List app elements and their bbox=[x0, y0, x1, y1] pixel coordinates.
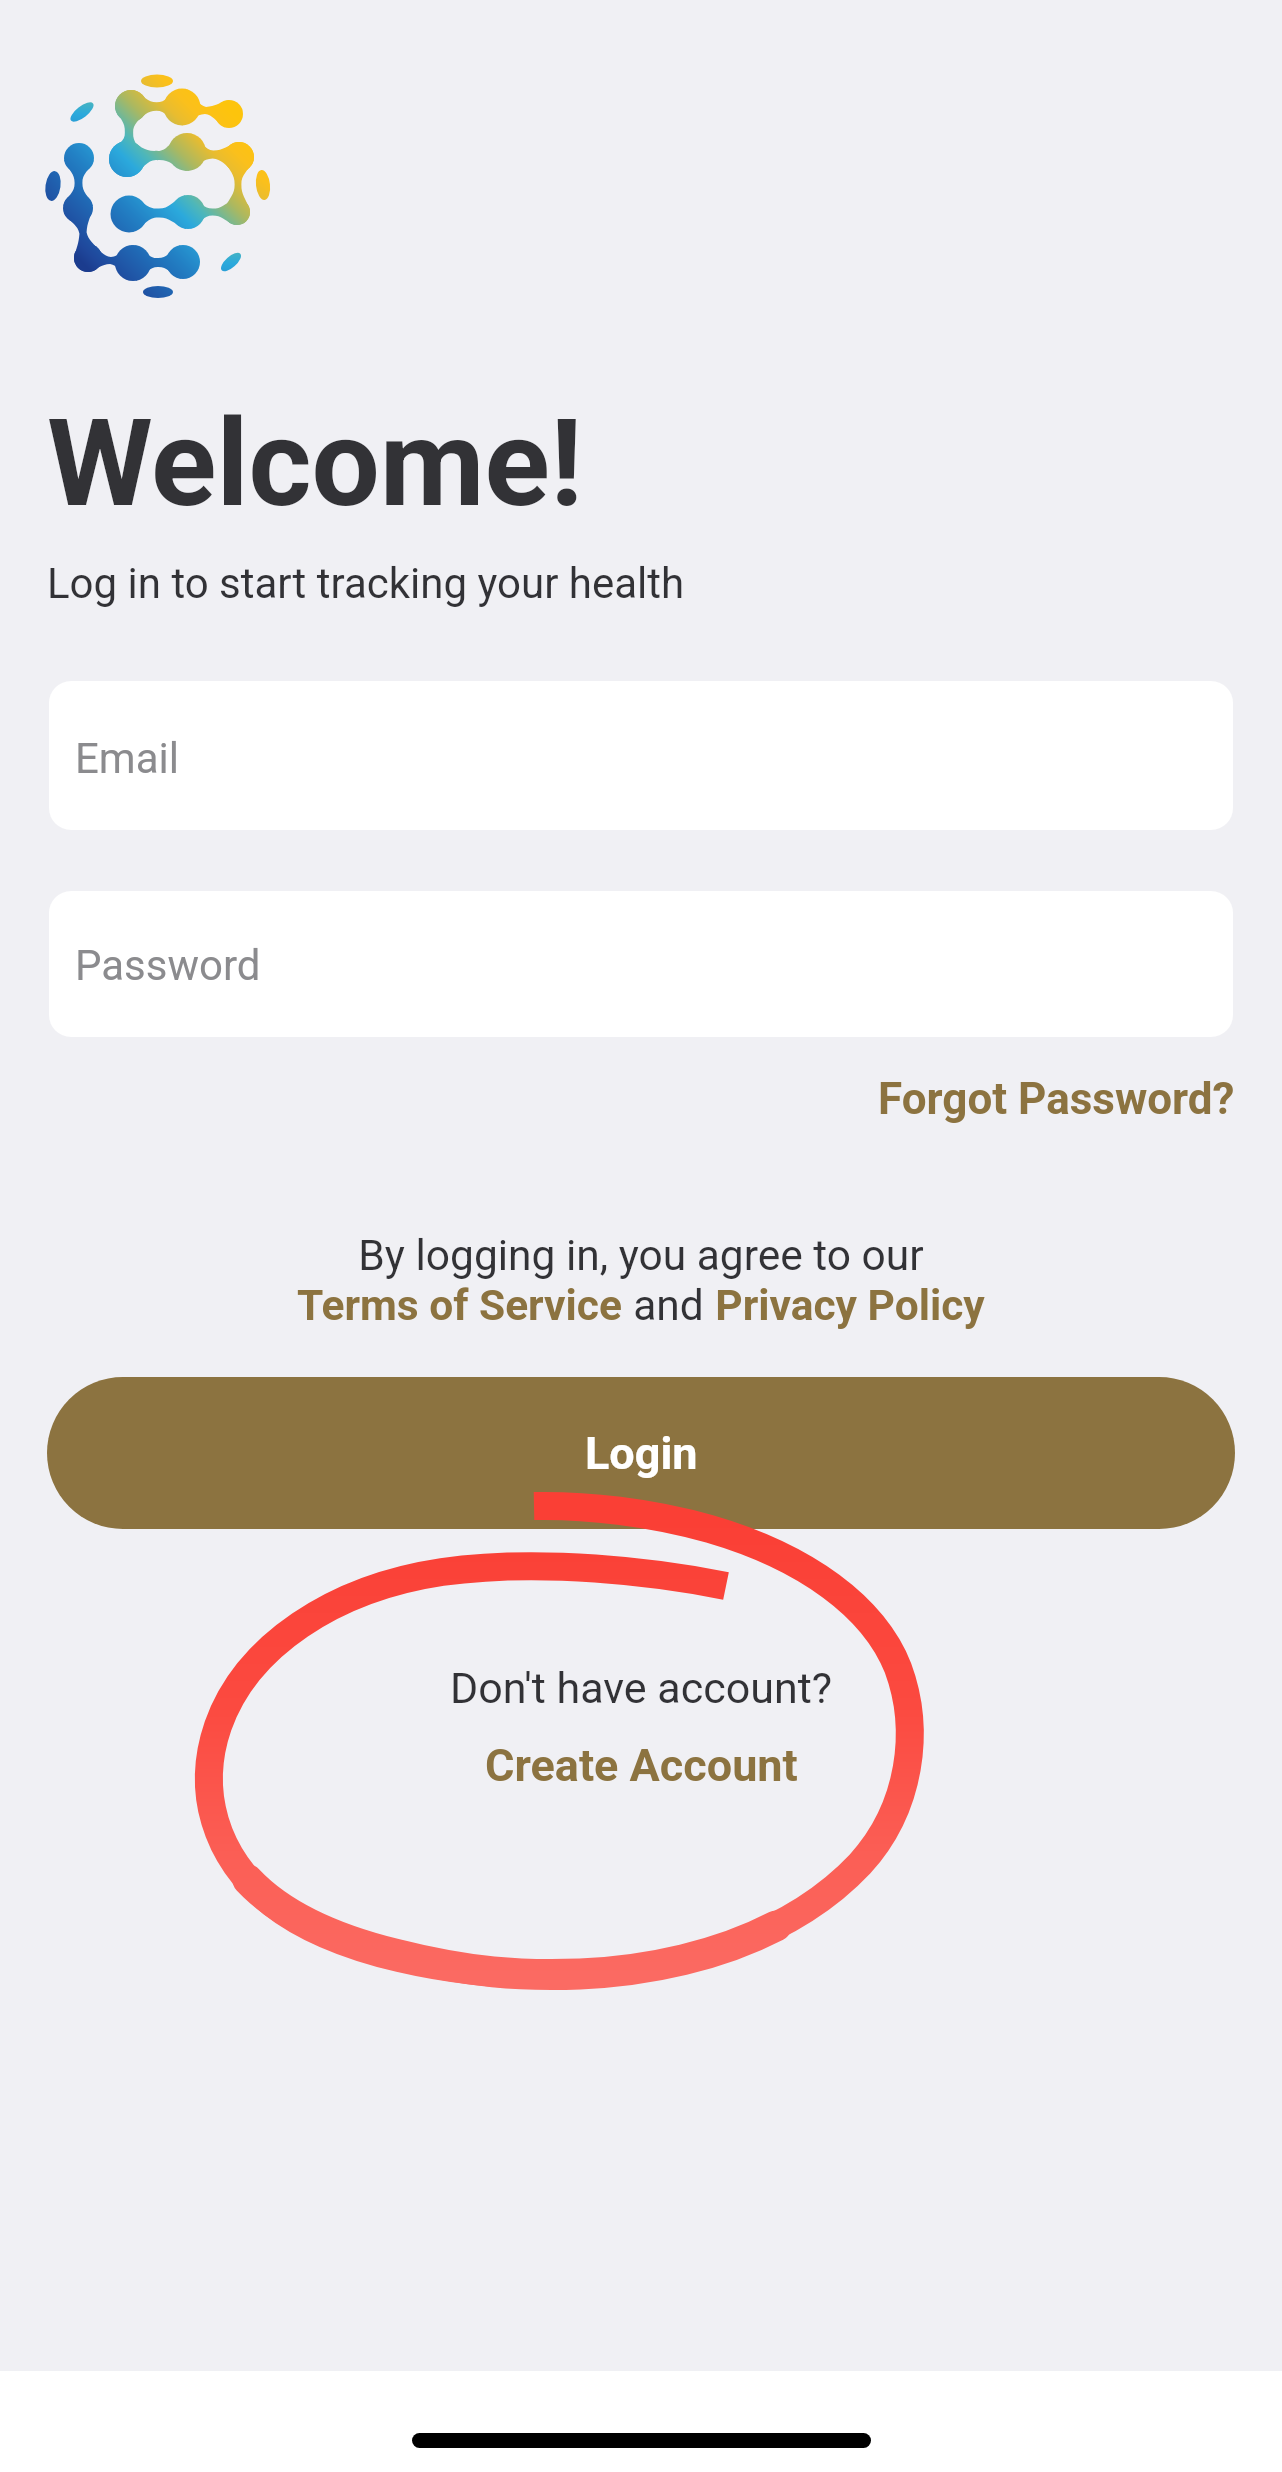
staticText: Privacy Policy bbox=[715, 1281, 985, 1331]
staticText: Password bbox=[75, 941, 261, 990]
staticText: Terms of Service bbox=[297, 1281, 622, 1331]
staticText: Create Account bbox=[485, 1739, 798, 1792]
staticText: Welcome! bbox=[47, 393, 583, 535]
button[interactable]: Login bbox=[47, 1377, 1235, 1529]
staticText: Don't have account? bbox=[0, 1663, 1282, 1713]
button[interactable]: Email bbox=[49, 681, 1233, 830]
staticText: Log in to start tracking your health bbox=[47, 559, 685, 608]
staticText: Forgot Password? bbox=[878, 1073, 1235, 1125]
button[interactable]: Terms of Service bbox=[297, 1281, 622, 1331]
button[interactable]: Create Account bbox=[485, 1739, 798, 1792]
staticText: Login bbox=[585, 1427, 698, 1480]
staticText: and bbox=[633, 1281, 704, 1331]
button[interactable]: Password bbox=[49, 891, 1233, 1037]
staticText: By logging in, you agree to our bbox=[0, 1231, 1282, 1281]
button[interactable]: Forgot Password? bbox=[878, 1073, 1235, 1125]
button[interactable]: Privacy Policy bbox=[715, 1281, 985, 1331]
staticText: Email bbox=[75, 734, 179, 783]
